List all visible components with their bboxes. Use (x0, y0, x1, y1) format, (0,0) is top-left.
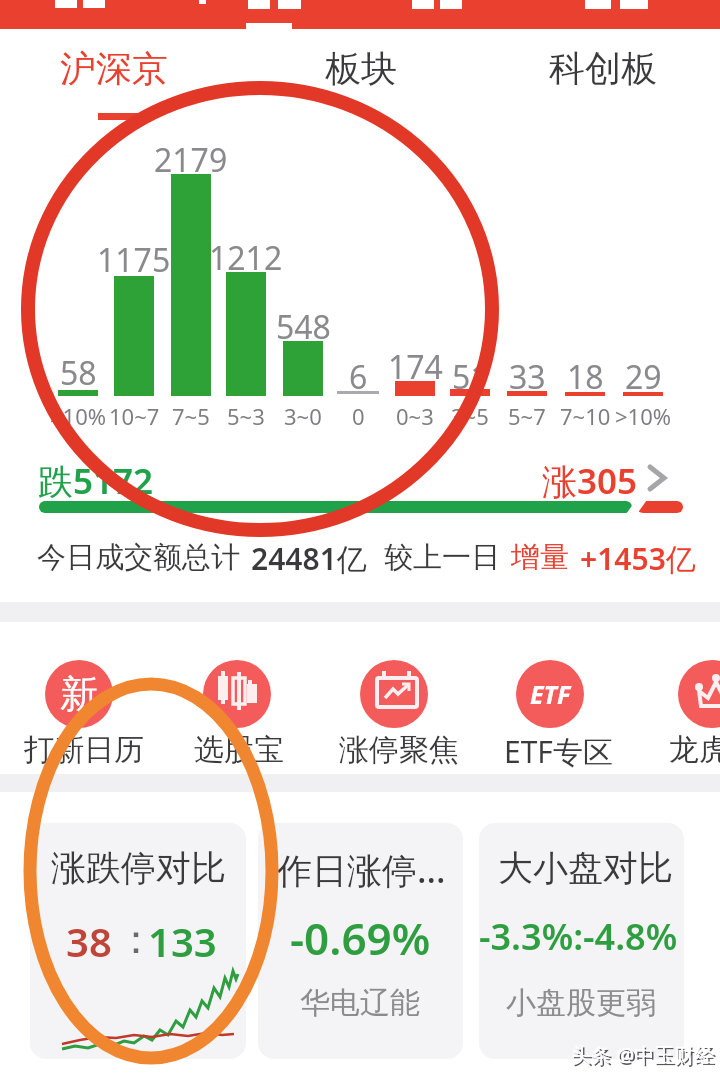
staticText: 3~0 (284, 401, 322, 431)
button[interactable] (0, 0, 720, 29)
staticText: 头条 @中玉财经 (573, 1043, 717, 1070)
staticText: 涨停聚焦 (339, 731, 459, 769)
staticText: 涨跌停对比 (51, 846, 226, 890)
staticText: 新 (60, 670, 98, 718)
staticText: 华电辽能 (300, 984, 420, 1022)
button[interactable]: 科创板 (549, 46, 657, 91)
staticText: >10% (50, 401, 107, 431)
button[interactable]: 新 (45, 660, 113, 728)
staticText: 24481亿 (251, 538, 367, 579)
staticText: 7~10 (560, 401, 611, 431)
staticText: 头条 @中玉财经 (571, 1041, 715, 1068)
button[interactable]: ETF (516, 660, 584, 728)
staticText: 较上一日 (384, 539, 500, 576)
staticText: ETF (530, 677, 571, 711)
staticText: 18 (567, 355, 604, 399)
staticText: 增量 (511, 539, 569, 576)
staticText: 1212 (209, 236, 283, 280)
staticText: 548 (276, 305, 331, 349)
staticText: -3.3%:-4.8% (479, 912, 678, 961)
staticText: 29 (625, 355, 662, 399)
staticText: 3~5 (451, 401, 489, 431)
button[interactable] (30, 823, 246, 1059)
staticText: ETF专区 (504, 731, 613, 772)
button[interactable] (479, 823, 684, 1059)
staticText: 5~3 (227, 401, 265, 431)
staticText: 0~3 (396, 401, 434, 431)
staticText: -0.69% (290, 908, 431, 968)
staticText: 6 (349, 355, 368, 399)
staticText: >10% (615, 401, 672, 431)
button[interactable]: 沪深京 (60, 46, 168, 91)
staticText: 打新日历 (24, 731, 144, 769)
staticText: 大小盘对比 (498, 846, 673, 890)
staticText: 作日涨停... (277, 846, 446, 894)
button[interactable]: 板块 (325, 46, 397, 91)
staticText: 涨305 (542, 457, 638, 505)
staticText: 174 (388, 345, 443, 389)
staticText: +1453亿 (580, 538, 696, 579)
staticText: 科创板 (549, 46, 657, 91)
button[interactable] (360, 660, 428, 728)
staticText: 沪深京 (60, 46, 168, 91)
button[interactable] (203, 660, 271, 728)
staticText: 0 (352, 401, 365, 431)
staticText: 38 (66, 914, 112, 968)
staticText: 58 (60, 351, 97, 395)
staticText: 5~7 (508, 401, 546, 431)
staticText: 33 (509, 355, 546, 399)
staticText: 跌5172 (38, 457, 154, 505)
staticText: 板块 (325, 46, 397, 91)
staticText: 7~5 (172, 401, 210, 431)
button[interactable] (678, 660, 720, 728)
staticText: 10~7 (109, 401, 160, 431)
staticText: 龙虎榜 (669, 731, 720, 769)
staticText: 今日成交额总计 (37, 539, 240, 576)
staticText: 2179 (154, 138, 228, 182)
staticText: 小盘股更弱 (506, 984, 656, 1022)
staticText: 51 (452, 355, 489, 399)
staticText: ： (116, 914, 156, 964)
staticText: 133 (148, 914, 217, 968)
button[interactable] (258, 823, 463, 1059)
staticText: 选股宝 (194, 731, 284, 769)
staticText: 1175 (97, 238, 171, 282)
